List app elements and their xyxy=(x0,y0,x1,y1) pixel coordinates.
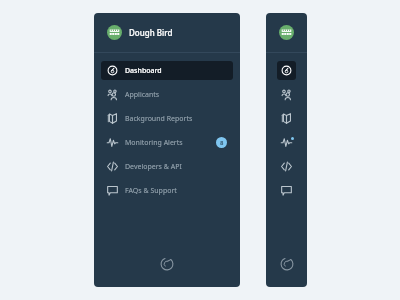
button[interactable]: Background Reports xyxy=(277,109,296,128)
staticText: Dashboard xyxy=(125,66,162,76)
button[interactable]: Dough Bird xyxy=(94,13,240,52)
button[interactable]: Dashboard xyxy=(101,61,233,80)
staticText: Dough Bird xyxy=(129,27,173,38)
button[interactable]: Applicants xyxy=(277,85,296,104)
button[interactable]: Applicants xyxy=(101,85,233,104)
button[interactable]: FAQs & Support xyxy=(277,181,296,200)
button[interactable]: Refresh xyxy=(277,254,297,274)
button[interactable]: Developers & API xyxy=(101,157,233,176)
button[interactable]: Monitoring Alerts xyxy=(101,133,233,152)
staticText: Background Reports xyxy=(125,114,193,124)
button[interactable]: Dough Bird xyxy=(266,13,307,52)
button[interactable]: Background Reports xyxy=(101,109,233,128)
staticText: Developers & API xyxy=(125,162,182,172)
button[interactable]: FAQs & Support xyxy=(101,181,233,200)
button[interactable]: Dashboard xyxy=(277,61,296,80)
button[interactable]: Refresh xyxy=(157,254,177,274)
staticText: 8 xyxy=(220,139,224,147)
staticText: Monitoring Alerts xyxy=(125,138,183,148)
staticText: Applicants xyxy=(125,90,160,100)
button[interactable]: Monitoring Alerts xyxy=(277,133,296,152)
staticText: FAQs & Support xyxy=(125,186,177,196)
button[interactable]: Developers & API xyxy=(277,157,296,176)
